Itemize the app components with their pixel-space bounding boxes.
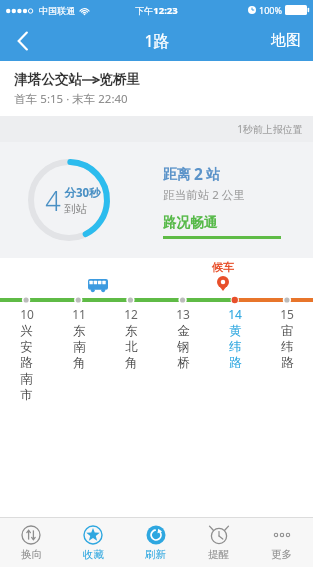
staticText: 东 (125, 323, 138, 339)
staticText: 兴 (20, 323, 33, 339)
staticText: 提醒 (208, 548, 229, 561)
button[interactable]: 津塔公交站 (0, 61, 313, 116)
button[interactable]: 13 (157, 306, 209, 371)
staticText: 下午 (135, 5, 153, 16)
staticText: 黄 (229, 323, 242, 339)
staticText: 地图 (271, 31, 301, 50)
staticText: 角 (73, 355, 86, 371)
staticText: 14 (228, 306, 242, 322)
staticText: 13 (176, 306, 190, 322)
staticText: 距离 (163, 166, 191, 184)
button[interactable]: 14 (209, 306, 261, 371)
button[interactable]: 15 (261, 306, 313, 371)
staticText: 分30秒 (64, 185, 101, 201)
staticText: 路 (229, 355, 242, 371)
staticText: 津塔公交站 (14, 71, 82, 88)
staticText: 收藏 (83, 548, 104, 561)
staticText: 南 (20, 371, 33, 387)
staticText: 纬 (229, 339, 242, 355)
staticText: 安 (20, 339, 33, 355)
staticText: 路 (20, 355, 33, 371)
staticText: 到站 (64, 202, 87, 216)
button[interactable]: 10 (0, 306, 53, 403)
button[interactable]: 11 (53, 306, 105, 371)
staticText: 东 (73, 323, 86, 339)
staticText: 刷新 (145, 548, 166, 561)
staticText: 钢 (177, 339, 190, 355)
staticText: 站 (206, 166, 220, 184)
staticText: 宙 (281, 323, 294, 339)
staticText: 2 (194, 163, 203, 184)
staticText: 100% (259, 4, 282, 16)
staticText: 12:23 (153, 4, 178, 17)
staticText: 15 (280, 306, 294, 322)
staticText: 首车 5:15 · 末车 22:40 (14, 91, 128, 107)
button[interactable]: 提醒 (187, 518, 250, 567)
button[interactable]: 收藏 (62, 518, 124, 567)
staticText: 10 (20, 306, 34, 322)
staticText: 纬 (281, 339, 294, 355)
staticText: 中国联通 (39, 5, 75, 16)
staticText: 换向 (21, 548, 42, 561)
button[interactable]: 地图 (259, 20, 313, 61)
button[interactable]: 刷新 (124, 518, 187, 567)
staticText: 1路 (144, 30, 170, 52)
staticText: 路 (281, 355, 294, 371)
button[interactable]: 12 (105, 306, 157, 371)
staticText: 南 (73, 339, 86, 355)
staticText: 1秒前上报位置 (237, 122, 303, 136)
staticText: 11 (72, 306, 86, 322)
staticText: 览桥里 (99, 71, 140, 88)
staticText: 更多 (271, 548, 292, 561)
staticText: 市 (20, 387, 33, 403)
staticText: 候车 (212, 260, 234, 274)
staticText: 角 (125, 355, 138, 371)
staticText: 4 (45, 182, 61, 219)
staticText: 桥 (177, 355, 190, 371)
button[interactable]: 换向 (0, 518, 62, 567)
button[interactable]: Back (0, 20, 46, 61)
staticText: 路况畅通 (163, 214, 217, 231)
staticText: 12 (124, 306, 138, 322)
staticText: 距当前站 2 公里 (163, 187, 245, 203)
staticText: 北 (125, 339, 138, 355)
staticText: 金 (177, 323, 190, 339)
button[interactable]: 更多 (250, 518, 313, 567)
